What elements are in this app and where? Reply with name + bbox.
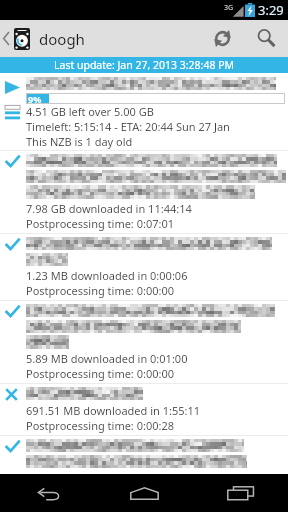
staticText: 4.51 GB left over 5.00 GB — [26, 104, 154, 119]
button[interactable]: Refresh — [200, 20, 244, 57]
staticText: 3:29 — [258, 1, 284, 19]
button[interactable]: Search — [244, 20, 288, 57]
button[interactable]: Recent apps — [192, 474, 288, 512]
staticText: 1.23 MB downloaded in 0:00:06 — [26, 268, 188, 283]
button[interactable]: 7.98 GB downloaded in 11:44:14 — [0, 151, 288, 233]
staticText: 691.51 MB downloaded in 1:55:11 — [26, 403, 201, 418]
staticText: 3G — [224, 3, 234, 13]
button[interactable]: Back — [0, 474, 96, 512]
staticText: 9% — [28, 93, 42, 104]
button[interactable]: 691.51 MB downloaded in 1:55:11 — [0, 384, 288, 435]
staticText: Postprocessing time: 0:07:01 — [26, 216, 175, 231]
button[interactable]: 9% — [0, 73, 288, 150]
staticText: doogh — [39, 29, 85, 49]
staticText: Timeleft: 5:15:14 - ETA: 20:44 Sun 27 Ja… — [26, 119, 230, 134]
button[interactable]: 5.89 MB downloaded in 0:01:00 — [0, 301, 288, 383]
staticText: This NZB is 1 day old — [26, 134, 133, 149]
staticText: Postprocessing time: 0:00:00 — [26, 366, 175, 381]
button[interactable] — [0, 436, 288, 472]
staticText: Postprocessing time: 0:00:28 — [26, 418, 175, 433]
button[interactable]: Home — [96, 474, 192, 512]
staticText: Postprocessing time: 0:00:00 — [26, 283, 175, 298]
button[interactable]: doogh — [0, 20, 91, 57]
staticText: 5.89 MB downloaded in 0:01:00 — [26, 351, 188, 366]
staticText: Last update: Jan 27, 2013 3:28:48 PM — [54, 58, 235, 72]
button[interactable]: 1.23 MB downloaded in 0:00:06 — [0, 234, 288, 300]
staticText: 7.98 GB downloaded in 11:44:14 — [26, 201, 192, 216]
